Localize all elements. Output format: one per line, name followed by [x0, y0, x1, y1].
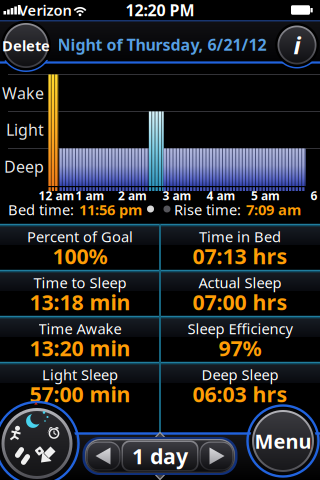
button[interactable]: i [275, 23, 319, 67]
staticText: Time Awake [38, 319, 121, 338]
staticText: 12 am [38, 187, 74, 203]
staticText: 2 am [118, 187, 147, 203]
staticText: 13:18 min [29, 288, 130, 316]
staticText: Deep Sleep [201, 365, 278, 384]
staticText: 4 am [206, 187, 235, 203]
button[interactable] [0, 404, 76, 480]
staticText: 5 am [251, 187, 280, 203]
button[interactable]: 1 day [121, 440, 198, 471]
staticText: 07:00 hrs [192, 288, 287, 316]
staticText: i [293, 29, 300, 61]
staticText: 1 am [75, 187, 104, 203]
staticText: Rise time: [174, 200, 241, 219]
button[interactable]: Menu [249, 407, 317, 475]
button[interactable] [199, 440, 233, 471]
staticText: Night of Thursday, 6/21/12 [57, 34, 266, 55]
staticText: 7:09 am [246, 200, 301, 219]
staticText: Deep [4, 156, 44, 177]
staticText: 11:56 pm [79, 200, 142, 219]
staticText: 97% [218, 334, 261, 362]
staticText: Time to Sleep [33, 273, 126, 292]
staticText: Actual Sleep [198, 273, 281, 292]
staticText: Bed time: [8, 200, 74, 219]
staticText: 1 day [132, 442, 188, 470]
staticText: Menu [254, 428, 311, 454]
button[interactable] [83, 437, 236, 474]
button[interactable]: Delete [1, 20, 51, 70]
staticText: 13:20 min [29, 334, 130, 362]
staticText: Light Sleep [42, 365, 118, 384]
staticText: Time in Bed [199, 227, 281, 246]
staticText: 06:03 hrs [192, 380, 287, 408]
staticText: Wake [2, 82, 44, 104]
staticText: 3 am [162, 187, 191, 203]
staticText: 07:13 hrs [192, 242, 287, 270]
staticText: Sleep Efficiency [187, 319, 292, 338]
staticText: Light [6, 119, 44, 140]
staticText: Percent of Goal [27, 227, 133, 246]
staticText: Delete [2, 36, 50, 55]
staticText: 6 [310, 187, 317, 203]
button[interactable] [86, 440, 120, 471]
staticText: Verizon [18, 0, 71, 20]
staticText: 57:00 min [29, 380, 130, 408]
staticText: 12:20 PM [125, 0, 194, 21]
staticText: 100% [52, 242, 107, 270]
